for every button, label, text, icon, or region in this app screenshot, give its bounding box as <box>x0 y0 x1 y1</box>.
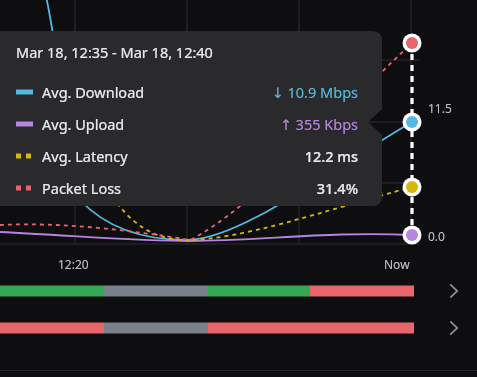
button[interactable]: Packet Loss <box>16 172 358 204</box>
button[interactable]: Show details <box>0 276 477 306</box>
staticText: Now <box>384 256 410 272</box>
staticText: 12:20 <box>58 256 89 272</box>
staticText: 31.4% <box>316 178 358 198</box>
button[interactable]: Avg. Latency <box>16 140 358 172</box>
other: Show details <box>431 276 477 306</box>
staticText: Avg. Upload <box>42 114 125 134</box>
staticText: ↓ 10.9 Mbps <box>271 82 358 102</box>
button[interactable]: Mar 18, 12:35 - Mar 18, 12:40 <box>0 31 382 206</box>
staticText: 12.2 ms <box>304 146 358 166</box>
staticText: Mar 18, 12:35 - Mar 18, 12:40 <box>16 42 213 62</box>
other: Show details <box>431 313 477 343</box>
button[interactable]: Avg. Upload <box>16 108 358 140</box>
staticText: Avg. Download <box>42 82 145 102</box>
staticText: 0.0 <box>428 228 445 244</box>
staticText: Packet Loss <box>42 178 122 198</box>
staticText: 11.5 <box>428 100 452 116</box>
button[interactable]: Show details <box>0 313 477 343</box>
button[interactable]: Avg. Download <box>16 76 358 108</box>
staticText: Avg. Latency <box>42 146 128 166</box>
staticText: ↑ 355 Kbps <box>279 114 358 134</box>
